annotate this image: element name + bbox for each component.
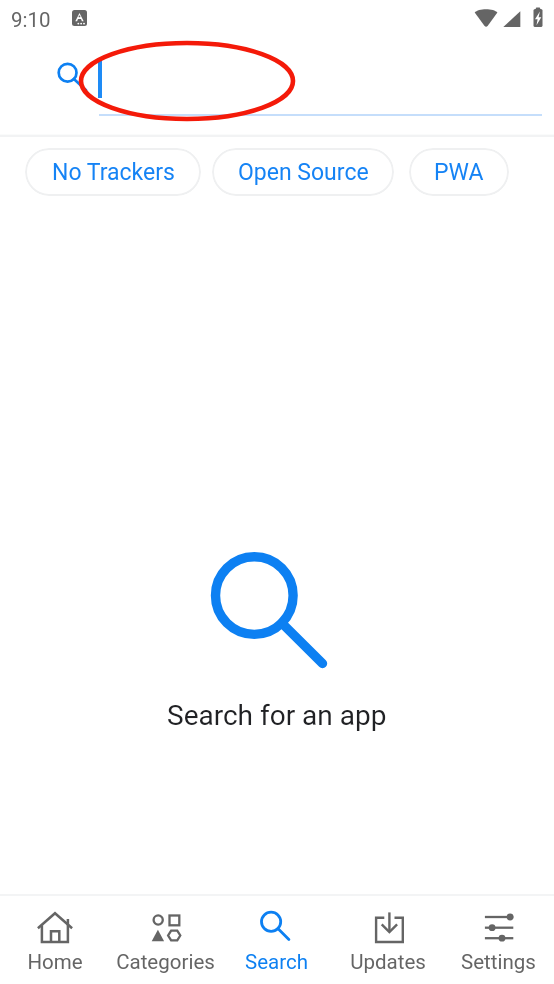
staticText: Settings: [461, 950, 536, 974]
button[interactable]: Open Source: [212, 148, 394, 196]
staticText: Categories: [116, 950, 215, 974]
staticText: Open Source: [238, 159, 369, 186]
button[interactable]: Settings: [443, 896, 554, 984]
button[interactable]: No Trackers: [25, 148, 201, 196]
button[interactable]: Home: [0, 896, 110, 984]
staticText: 9:10: [11, 8, 51, 32]
button[interactable]: Categories: [110, 896, 221, 984]
button[interactable]: Search: [50, 55, 94, 99]
staticText: Updates: [350, 950, 426, 974]
staticText: Search for an app: [167, 699, 387, 732]
button[interactable]: PWA: [409, 148, 509, 196]
staticText: Search: [245, 950, 308, 974]
button[interactable]: Search: [221, 896, 332, 984]
staticText: Home: [27, 950, 83, 974]
button[interactable]: Updates: [332, 896, 443, 984]
staticText: PWA: [434, 159, 484, 186]
staticText: No Trackers: [52, 159, 175, 186]
